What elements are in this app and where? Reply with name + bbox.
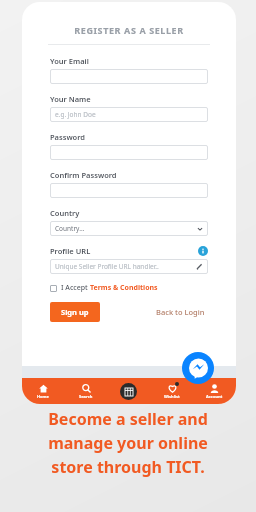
staticText: e.g. John Doe	[55, 110, 96, 119]
staticText: REGISTER AS A SELLER	[22, 24, 236, 36]
staticText: Search	[79, 394, 93, 399]
button[interactable]: Unique Seller Profile URL handler..	[50, 259, 208, 274]
staticText: Unique Seller Profile URL handler..	[55, 262, 159, 271]
staticText: I Accept	[61, 283, 90, 293]
staticText: Country...	[55, 224, 85, 233]
button[interactable]: I Accept	[50, 283, 158, 293]
staticText: Become a seller and	[48, 408, 208, 430]
staticText: Sign up	[61, 307, 89, 317]
staticText: Back to Login	[156, 307, 205, 317]
button[interactable]: Account	[193, 378, 236, 404]
staticText: Your Name	[50, 94, 91, 104]
staticText: store through TICT.	[51, 456, 205, 478]
staticText: Confirm Password	[50, 170, 117, 180]
button[interactable]	[50, 69, 208, 84]
staticText: manage your online	[48, 432, 208, 454]
button[interactable]: Profile URL info	[198, 246, 208, 256]
button[interactable]: e.g. John Doe	[50, 107, 208, 122]
button[interactable]: Categories	[120, 383, 137, 400]
staticText: Home	[37, 394, 49, 399]
staticText: Wishlist	[164, 394, 180, 399]
staticText: Terms & Conditions	[90, 283, 158, 293]
button[interactable]	[50, 183, 208, 198]
staticText: Password	[50, 132, 86, 142]
staticText: Profile URL	[50, 246, 91, 256]
staticText: Country	[50, 208, 80, 218]
button[interactable]: Search	[64, 378, 107, 404]
button[interactable]: Back to Login	[153, 304, 208, 320]
button[interactable]: Sign up	[50, 302, 100, 322]
staticText: Account	[206, 394, 223, 399]
button[interactable]: Country...	[50, 221, 208, 236]
staticText: Your Email	[50, 56, 89, 66]
button[interactable]: Wishlist	[150, 378, 193, 404]
button[interactable]	[50, 145, 208, 160]
button[interactable]: Messenger chat	[182, 352, 214, 384]
button[interactable]: Home	[22, 378, 64, 404]
